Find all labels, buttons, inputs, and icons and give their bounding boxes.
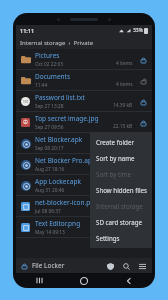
button[interactable]: Back [121,273,137,288]
staticText: 22.15 kB [113,123,133,130]
staticText: Jul 08 06:37 [35,208,61,215]
button[interactable]: Unlocked [138,222,148,232]
staticText: Pictures [35,51,60,60]
button[interactable]: SD card storage [90,214,152,230]
button[interactable]: More options [136,260,148,272]
staticText: Net Blocker.apk [35,135,83,144]
button[interactable]: Home [76,273,92,288]
staticText: Sort by name [96,154,135,162]
button[interactable]: Shield [104,260,116,272]
button[interactable]: Net Blocker Pro.apk [16,154,152,175]
button[interactable]: Net Blocker.apk [16,133,152,154]
staticText: 4 items [116,60,133,67]
button[interactable]: Create folder [90,134,152,150]
button[interactable]: net-blocker-icon.png [16,196,152,217]
button[interactable]: Top secret image.jpg [16,112,152,133]
staticText: Internal storage › Private [20,39,94,47]
button[interactable]: Internal storage [90,198,152,214]
button[interactable]: Locked [138,96,148,106]
button[interactable]: Search [120,260,132,272]
staticText: Sep 27 09:56 [35,124,64,131]
staticText: 11:11 [20,27,35,34]
staticText: May 14 09:13 [35,229,65,236]
staticText: 11:44 [35,82,48,89]
button[interactable]: 101 [16,91,152,112]
staticText: Sort by time [96,170,132,178]
button[interactable]: Locked [138,117,148,127]
staticText: Net Blocker Pro.apk [35,156,96,165]
staticText: 33% [133,27,143,34]
staticText: Internal storage [96,202,143,210]
staticText: App Locker.apk [35,177,81,186]
button[interactable]: Internal storage › Private [16,36,152,49]
button[interactable]: Sort by time [90,166,152,182]
button[interactable]: Settings [90,230,152,246]
staticText: SD card storage [96,218,142,226]
staticText: Oct 02 22:03 [35,61,64,68]
staticText: Password list.txt [35,93,85,102]
staticText: Sep 27 13:28 [35,103,64,110]
staticText: Top secret image.jpg [35,114,99,123]
staticText: Create folder [96,138,134,146]
staticText: 14.39 kB [113,102,133,109]
button[interactable]: Sort by name [90,150,152,166]
staticText: 4 items [116,81,133,88]
staticText: File Locker [32,261,65,270]
staticText: Settings [96,234,120,242]
button[interactable]: Unlocked [138,201,148,211]
button[interactable]: Pictures [16,49,152,70]
button[interactable]: App Locker.apk [16,175,152,196]
staticText: Text Editor.png [35,219,81,228]
button[interactable]: File Locker [20,261,65,270]
button[interactable]: Text Editor.png [16,217,152,238]
button[interactable]: Recent apps [31,273,47,288]
button[interactable]: Unlocked [138,180,148,190]
staticText: Aug 31 20:46 [35,187,65,194]
staticText: Aug 27 18:16 [35,166,65,173]
staticText: Show hidden files [96,186,148,194]
button[interactable]: Show hidden files [90,182,152,198]
button[interactable]: Unlocked [138,75,148,85]
staticText: Documents [35,72,71,81]
staticText: 101 [23,100,29,104]
button[interactable]: Locked [138,54,148,64]
staticText: net-blocker-icon.png [35,198,99,207]
button[interactable]: Documents [16,70,152,91]
staticText: Sep 08 20:17 [35,145,64,152]
